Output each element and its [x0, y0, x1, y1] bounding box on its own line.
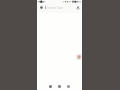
button[interactable]: Home [46, 81, 55, 90]
button[interactable]: Explore [55, 81, 64, 90]
button[interactable]: Profile [64, 81, 73, 90]
staticText: Search here [47, 6, 64, 10]
button[interactable]: Create [75, 53, 82, 61]
other: Menu [40, 6, 43, 9]
button[interactable]: Menu [37, 4, 82, 11]
other: Voice search [77, 6, 79, 9]
